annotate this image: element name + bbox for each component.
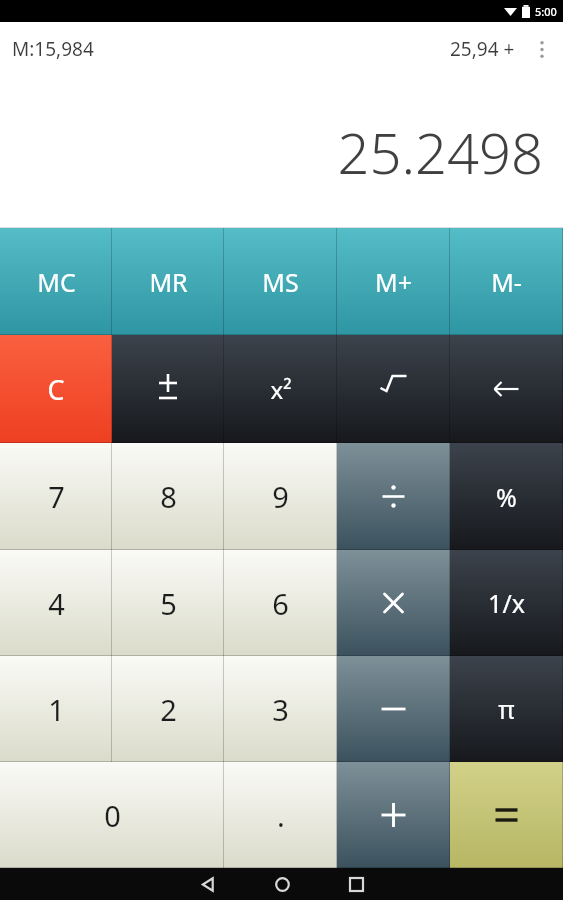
button[interactable]: Divide xyxy=(337,443,450,550)
button[interactable]: 1/x xyxy=(450,550,563,656)
staticText: x² xyxy=(270,373,292,406)
staticText: M:15,984 xyxy=(12,36,94,62)
button[interactable]: Subtract xyxy=(337,656,450,762)
button[interactable]: 25.2498 xyxy=(0,75,563,228)
button[interactable]: M+ xyxy=(337,228,450,335)
staticText: 25,94 + xyxy=(450,36,515,62)
staticText: 4 xyxy=(48,584,65,623)
staticText: MR xyxy=(149,265,188,299)
button[interactable]: M- xyxy=(450,228,563,335)
button[interactable]: 7 xyxy=(0,443,112,550)
button[interactable]: Backspace xyxy=(450,335,563,443)
button[interactable]: Equals xyxy=(450,762,563,868)
button[interactable]: 9 xyxy=(224,443,337,550)
button[interactable]: 3 xyxy=(224,656,337,762)
button[interactable]: Home xyxy=(271,873,293,895)
staticText: 25.2498 xyxy=(337,114,543,190)
button[interactable]: MR xyxy=(112,228,224,335)
staticText: 6 xyxy=(272,584,289,623)
staticText: 5:00 xyxy=(535,4,557,19)
staticText: 1 xyxy=(48,690,65,729)
staticText: MC xyxy=(37,265,76,299)
button[interactable]: % xyxy=(450,443,563,550)
button[interactable]: C xyxy=(0,335,112,443)
button[interactable]: 4 xyxy=(0,550,112,656)
button[interactable]: 2 xyxy=(112,656,224,762)
button[interactable]: More options xyxy=(529,36,555,62)
staticText: 5 xyxy=(160,584,177,623)
button[interactable]: Add xyxy=(337,762,450,868)
staticText: 0 xyxy=(104,796,121,835)
button[interactable]: x² xyxy=(224,335,337,443)
staticText: 2 xyxy=(160,690,177,729)
staticText: M- xyxy=(491,265,522,299)
staticText: M+ xyxy=(375,265,412,299)
staticText: π xyxy=(498,692,515,726)
staticText: 1/x xyxy=(488,586,525,620)
button[interactable]: 0 xyxy=(0,762,224,868)
button[interactable]: MS xyxy=(224,228,337,335)
staticText: 3 xyxy=(272,690,289,729)
button[interactable]: 6 xyxy=(224,550,337,656)
staticText: 9 xyxy=(272,477,289,516)
staticText: . xyxy=(277,796,285,835)
button[interactable]: . xyxy=(224,762,337,868)
staticText: 8 xyxy=(160,477,177,516)
button[interactable]: π xyxy=(450,656,563,762)
button[interactable]: Square root xyxy=(337,335,450,443)
button[interactable]: 5 xyxy=(112,550,224,656)
staticText: % xyxy=(496,480,517,514)
staticText: MS xyxy=(262,265,299,299)
staticText: C xyxy=(47,371,65,408)
button[interactable]: Recent apps xyxy=(345,873,367,895)
button[interactable]: MC xyxy=(0,228,112,335)
button[interactable]: 1 xyxy=(0,656,112,762)
button[interactable]: Back xyxy=(197,873,219,895)
button[interactable]: 8 xyxy=(112,443,224,550)
staticText: 7 xyxy=(48,477,65,516)
button[interactable]: Plus minus sign xyxy=(112,335,224,443)
button[interactable]: Multiply xyxy=(337,550,450,656)
